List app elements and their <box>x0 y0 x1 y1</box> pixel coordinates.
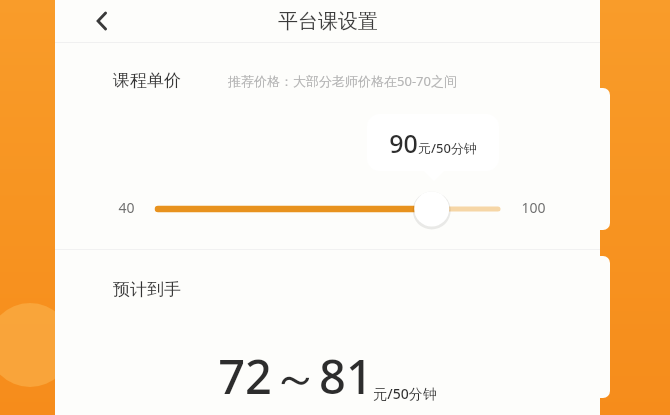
staticText: 90 <box>389 126 418 160</box>
staticText: 72～81 <box>218 344 373 408</box>
button[interactable]: Back <box>83 2 121 40</box>
staticText: 元/50分钟 <box>418 139 477 157</box>
staticText: 课程单价 <box>113 70 181 91</box>
button[interactable]: Side tab <box>588 88 610 230</box>
button[interactable]: Side tab <box>588 256 610 398</box>
staticText: 元/50分钟 <box>373 384 437 403</box>
staticText: 100 <box>521 198 546 217</box>
button[interactable]: 90 <box>367 114 499 171</box>
staticText: 推荐价格：大部分老师价格在50-70之间 <box>228 72 457 90</box>
staticText: 预计到手 <box>113 279 181 300</box>
staticText: 40 <box>118 198 135 217</box>
staticText: 平台课设置 <box>278 9 378 34</box>
button[interactable]: Price slider <box>150 189 506 229</box>
